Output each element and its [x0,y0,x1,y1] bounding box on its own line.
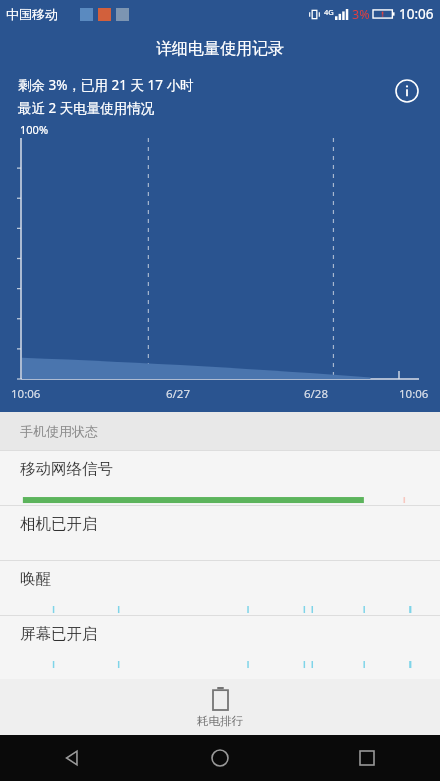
staticText: 移动网络信号 [20,459,113,479]
button[interactable]: 相机已开启 [0,505,440,560]
button[interactable]: Info [390,74,424,108]
button[interactable]: 耗电排行 [0,679,440,735]
button[interactable]: Home [146,735,293,781]
staticText: 100% [20,122,49,137]
staticText: 手机使用状态 [20,423,98,439]
staticText: 6/27 [166,386,191,402]
staticText: 相机已开启 [20,514,98,534]
staticText: 耗电排行 [197,714,243,728]
button[interactable]: Recents [293,735,440,781]
button[interactable]: Back [0,735,146,781]
staticText: 屏幕已开启 [20,624,98,644]
staticText: 剩余 3%，已用 21 天 17 小时 [18,76,194,94]
staticText: 6/28 [304,386,329,402]
staticText: 唤醒 [20,569,51,589]
staticText: 详细电量使用记录 [156,39,284,59]
button[interactable]: 移动网络信号 [0,450,440,505]
button[interactable]: 唤醒 [0,560,440,615]
staticText: 10:06 [11,386,41,402]
staticText: 4G [324,7,334,17]
staticText: 最近 2 天电量使用情况 [18,99,155,117]
staticText: 10:06 [399,386,429,402]
staticText: 3% [352,6,370,23]
staticText: 10:06 [399,5,434,23]
button[interactable]: 屏幕已开启 [0,615,440,670]
staticText: 中国移动 [6,6,58,22]
